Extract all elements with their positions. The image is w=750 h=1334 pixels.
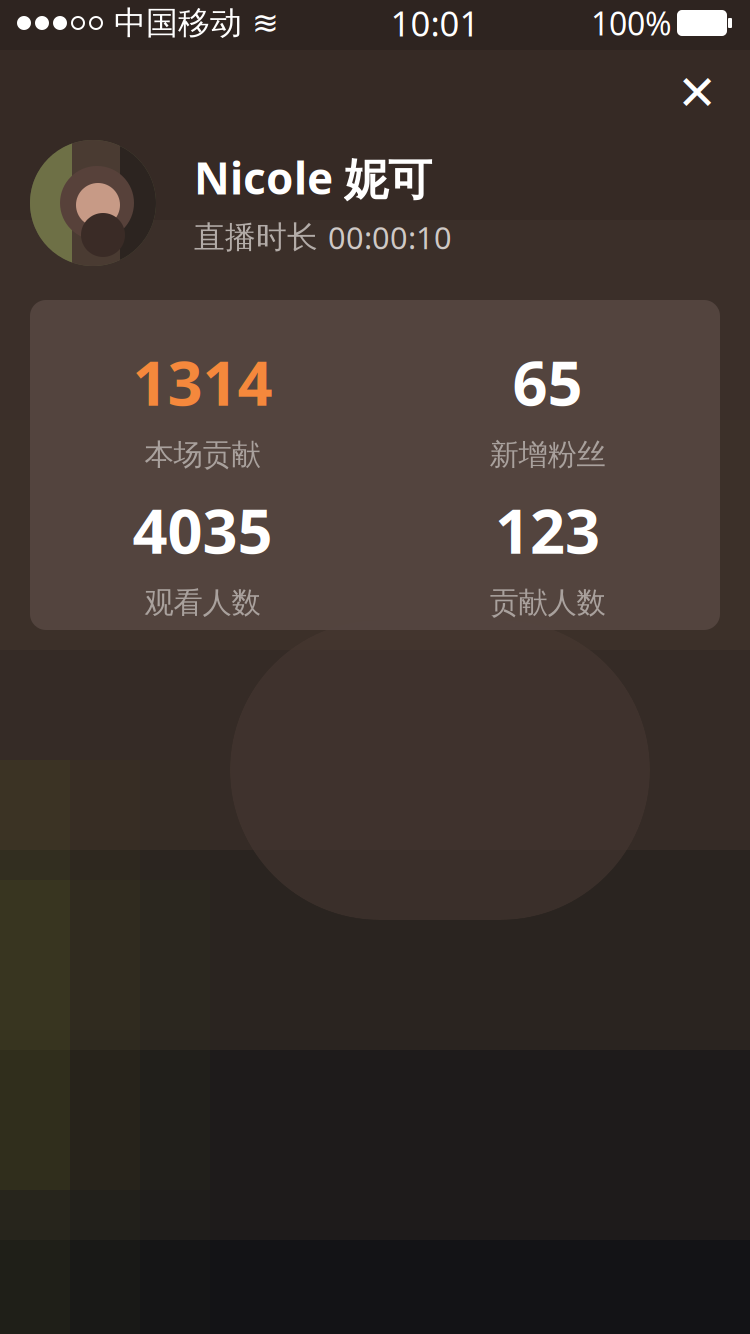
staticText: 新增粉丝 [489, 437, 605, 473]
staticText: 1314 [132, 341, 272, 423]
staticText: 65 [512, 341, 582, 423]
staticText: 00:00:10 [328, 217, 452, 258]
staticText: ✕ [677, 66, 717, 120]
button[interactable]: Close [662, 58, 732, 128]
staticText: 观看人数 [144, 585, 260, 621]
staticText: 本场贡献 [144, 437, 260, 473]
staticText: Nicole 妮可 [194, 148, 432, 207]
staticText: 贡献人数 [489, 585, 605, 621]
staticText: 123 [495, 489, 600, 571]
staticText: 直播时长 [194, 218, 318, 256]
staticText: 10:01 [390, 0, 479, 46]
staticText: 100% [591, 2, 672, 44]
staticText: ≋ [252, 5, 279, 41]
staticText: 中国移动 [114, 3, 242, 43]
staticText: 4035 [132, 489, 272, 571]
